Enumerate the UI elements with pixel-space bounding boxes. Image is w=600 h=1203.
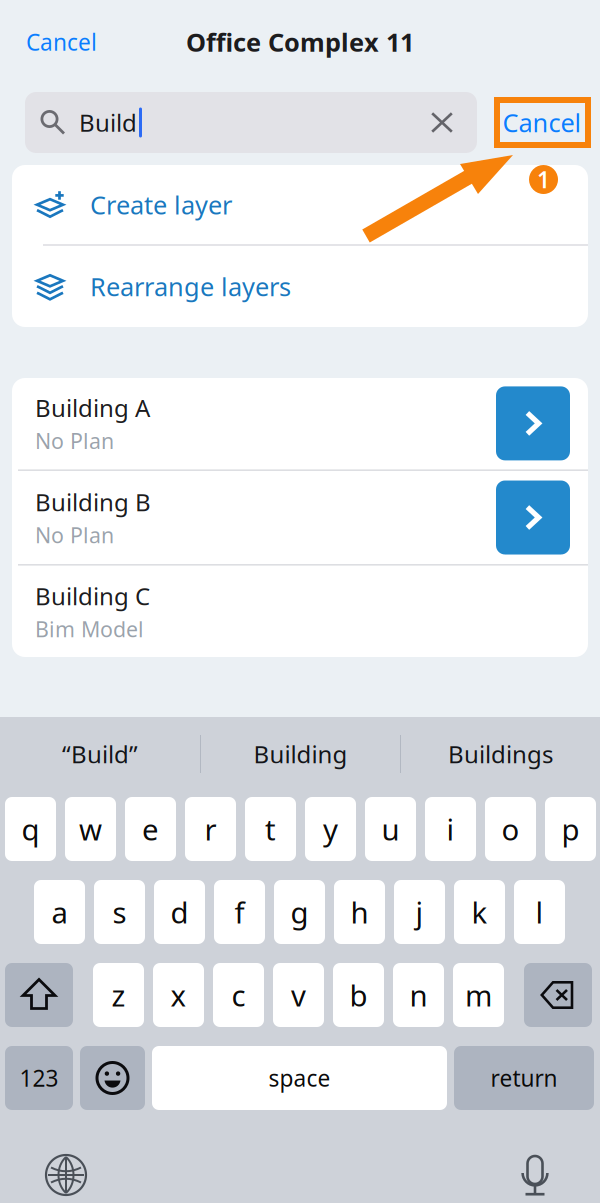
button[interactable]: u [365,797,416,861]
staticText: a [51,892,67,931]
staticText: o [501,809,519,848]
button[interactable]: d [154,880,205,944]
staticText: d [170,892,188,931]
button[interactable]: v [273,963,324,1027]
button[interactable]: o [485,797,536,861]
button[interactable]: Building C [12,566,588,658]
staticText: b [349,975,367,1014]
button[interactable]: q [5,797,56,861]
staticText: Office Complex 11 [186,25,414,59]
button[interactable]: i [425,797,476,861]
staticText: i [446,809,454,848]
staticText: l [535,892,543,931]
staticText: No Plan [35,521,114,549]
staticText: h [350,892,368,931]
staticText: 1 [537,164,550,194]
button[interactable]: y [305,797,356,861]
staticText: v [291,975,306,1014]
button[interactable]: Building A [12,377,588,469]
staticText: j [415,892,423,931]
button[interactable]: Cancel [0,13,160,71]
button[interactable]: Clear search [424,104,460,140]
button[interactable]: m [453,963,504,1027]
button[interactable]: Emoji [80,1046,145,1110]
staticText: m [465,975,492,1014]
staticText: r [204,809,216,848]
staticText: Create layer [90,188,232,221]
button[interactable]: b [333,963,384,1027]
staticText: space [268,1063,330,1093]
staticText: q [21,809,39,848]
button[interactable]: a [34,880,85,944]
button[interactable]: Building [201,723,400,785]
staticText: y [323,809,338,848]
button[interactable]: e [125,797,176,861]
button[interactable]: p [545,797,596,861]
staticText: Buildings [448,738,553,770]
staticText: c [231,975,245,1014]
button[interactable]: Building B [12,471,588,564]
staticText: Building C [35,580,150,612]
staticText: x [170,975,186,1014]
button[interactable]: Cancel [494,97,590,147]
button[interactable]: return [454,1046,594,1110]
staticText: Build [79,107,137,138]
button[interactable]: t [245,797,296,861]
button[interactable]: k [454,880,505,944]
staticText: Rearrange layers [90,269,291,303]
staticText: n [409,975,427,1014]
staticText: No Plan [35,427,114,455]
button[interactable]: “Build” [0,723,200,785]
staticText: 123 [19,1063,58,1093]
staticText: Building [253,738,347,770]
staticText: u [381,809,399,848]
staticText: z [111,975,125,1014]
button[interactable]: Rearrange layers [12,246,588,327]
button[interactable]: x [153,963,204,1027]
staticText: “Build” [62,738,138,770]
button[interactable]: s [94,880,145,944]
button[interactable]: Dictation [507,1153,563,1197]
button[interactable]: Change keyboard [38,1153,94,1197]
button[interactable]: 123 [5,1046,73,1110]
staticText: t [265,809,276,848]
button[interactable]: h [334,880,385,944]
staticText: Building A [35,392,150,424]
button[interactable]: Buildings [401,723,600,785]
staticText: Cancel [502,106,581,139]
staticText: g [290,892,308,931]
button[interactable]: c [213,963,264,1027]
button[interactable]: j [394,880,445,944]
staticText: Cancel [26,27,97,57]
staticText: Bim Model [35,615,144,643]
button[interactable]: w [65,797,116,861]
button[interactable]: z [93,963,144,1027]
button[interactable]: l [514,880,565,944]
staticText: Building B [35,486,151,518]
button[interactable]: r [185,797,236,861]
staticText: return [490,1063,557,1093]
button[interactable]: Delete [524,963,592,1027]
staticText: s [112,892,126,931]
button[interactable]: f [214,880,265,944]
button[interactable]: space [152,1046,447,1110]
staticText: e [142,809,159,848]
staticText: w [79,809,102,848]
button[interactable]: n [393,963,444,1027]
staticText: f [234,892,244,931]
button[interactable]: g [274,880,325,944]
staticText: k [471,892,487,931]
button[interactable]: Shift [5,963,73,1027]
button[interactable]: Create layer [12,165,588,244]
staticText: p [561,809,579,848]
